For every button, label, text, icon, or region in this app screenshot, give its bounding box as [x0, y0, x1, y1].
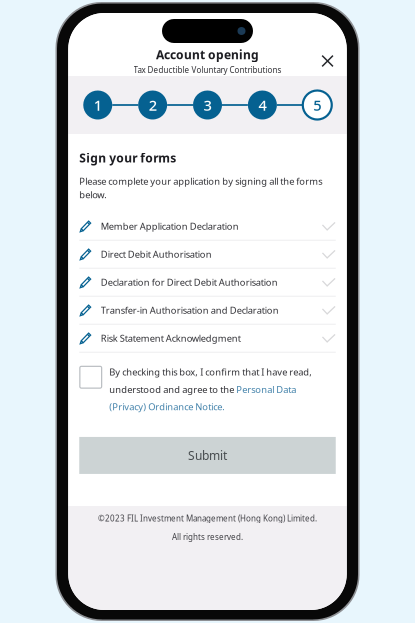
staticText: By checking this box, I confirm that I h… — [109, 366, 312, 378]
staticText: Please complete your application by sign… — [79, 175, 322, 187]
staticText: All rights reserved. — [172, 532, 243, 542]
staticText: ©2023 FIL Investment Management (Hong Ko… — [98, 513, 317, 524]
staticText: Risk Statement Acknowledgment — [101, 332, 241, 344]
staticText: Declaration for Direct Debit Authorisati… — [101, 276, 278, 288]
staticText: understood and agree to the — [109, 383, 236, 395]
staticText: Account opening — [156, 47, 259, 63]
staticText: Transfer-in Authorisation and Declaratio… — [101, 304, 279, 316]
staticText: 2 — [149, 95, 157, 115]
staticText: 4 — [258, 95, 266, 115]
staticText: 5 — [313, 95, 321, 115]
staticText: 3 — [203, 95, 211, 115]
button[interactable]: Risk Statement Acknowledgment — [79, 325, 336, 353]
staticText: 1 — [94, 95, 102, 115]
button[interactable]: Close — [316, 50, 339, 72]
staticText: Sign your forms — [79, 150, 176, 166]
button[interactable]: Submit — [79, 437, 336, 474]
button[interactable]: Declaration for Direct Debit Authorisati… — [79, 269, 336, 297]
staticText: Member Application Declaration — [101, 220, 239, 232]
button[interactable]: Member Application Declaration — [79, 213, 336, 241]
staticText: Direct Debit Authorisation — [101, 248, 212, 260]
button[interactable]: Direct Debit Authorisation — [79, 241, 336, 269]
staticText: Submit — [188, 447, 227, 463]
staticText: below. — [79, 188, 107, 201]
staticText: Personal Data — [236, 383, 296, 395]
staticText: (Privacy) Ordinance Notice. — [109, 400, 225, 413]
button[interactable]: Transfer-in Authorisation and Declaratio… — [79, 297, 336, 325]
staticText: Tax Deductible Voluntary Contributions — [133, 65, 281, 75]
button[interactable]: By checking this box, I confirm that I h… — [79, 366, 336, 413]
